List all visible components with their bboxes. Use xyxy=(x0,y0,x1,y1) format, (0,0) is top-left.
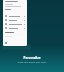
button[interactable] xyxy=(3,22,27,26)
button[interactable] xyxy=(3,18,27,22)
button[interactable] xyxy=(3,26,27,30)
staticText: Personalize xyxy=(0,56,64,60)
staticText: Make your phone truly yours xyxy=(1,61,63,64)
button[interactable] xyxy=(3,14,27,18)
